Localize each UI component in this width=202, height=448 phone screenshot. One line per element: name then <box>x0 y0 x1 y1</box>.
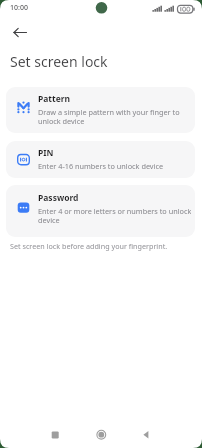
staticText: PIN <box>38 147 54 159</box>
button[interactable]: PIN <box>6 141 195 178</box>
button[interactable] <box>87 421 115 448</box>
staticText: Enter 4-16 numbers to unlock device <box>38 161 164 171</box>
staticText: Draw a simple pattern with your finger t… <box>38 107 180 126</box>
staticText: Enter 4 or more letters or numbers to un… <box>38 206 191 225</box>
button[interactable] <box>41 421 69 448</box>
button[interactable] <box>132 421 160 448</box>
button[interactable]: Pattern <box>6 87 195 133</box>
staticText: Set screen lock <box>10 52 108 71</box>
staticText: Set screen lock before adding your finge… <box>10 241 168 251</box>
staticText: 10:00 <box>10 3 28 13</box>
button[interactable]: Password <box>6 185 195 237</box>
staticText: Pattern <box>38 93 71 105</box>
staticText: Password <box>38 192 79 204</box>
button[interactable] <box>6 22 32 42</box>
